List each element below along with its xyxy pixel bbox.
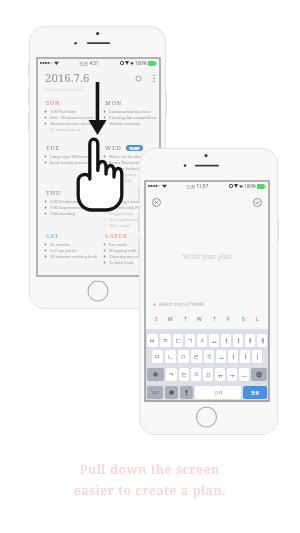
button[interactable]: More options xyxy=(148,73,159,84)
button[interactable]: ㅠ xyxy=(215,368,225,381)
staticText: 100% xyxy=(135,60,147,66)
button[interactable]: SUN xyxy=(44,99,102,132)
staticText: ㅗ xyxy=(218,353,225,361)
staticText: ㅅ xyxy=(199,337,206,345)
staticText: Write your plan xyxy=(145,252,269,261)
staticText: Practice guitar xyxy=(109,172,137,177)
staticText: LATER xyxy=(105,232,128,239)
staticText: easier to create a plan. xyxy=(74,482,227,499)
staticText: Car wash xyxy=(109,242,127,247)
staticText: M xyxy=(168,316,173,323)
staticText: Pull down the screen xyxy=(80,461,220,478)
button[interactable]: MON xyxy=(103,99,161,126)
staticText: Store gathering xyxy=(109,217,139,222)
staticText: Let's go party! xyxy=(50,248,77,253)
button[interactable]: ㅣ xyxy=(252,350,262,363)
button[interactable]: T xyxy=(209,314,220,325)
staticText: Club meeting xyxy=(50,211,76,216)
staticText: ㅣ xyxy=(254,353,261,361)
button[interactable]: ㅏ xyxy=(240,350,250,363)
staticText: Cleaning my room xyxy=(109,254,144,259)
staticText: 2016.7.6 xyxy=(45,70,90,86)
staticText: 3:00 Part time xyxy=(50,109,77,114)
button[interactable]: Done xyxy=(251,196,264,209)
staticText: ㅑ xyxy=(235,337,242,345)
button[interactable]: Backspace xyxy=(251,368,267,381)
staticText: F xyxy=(227,316,230,323)
button[interactable]: W xyxy=(194,314,205,325)
button[interactable]: ㅍ xyxy=(203,368,213,381)
button[interactable]: ㅂ xyxy=(147,334,158,347)
staticText: ㅠ xyxy=(217,371,224,379)
button[interactable]: SAT xyxy=(44,232,102,259)
staticText: MON xyxy=(105,99,122,106)
button[interactable]: ㅌ xyxy=(179,368,189,381)
button[interactable]: S xyxy=(151,314,162,325)
staticText: To bath Pooh xyxy=(109,260,134,265)
button[interactable]: ㅜ xyxy=(227,368,237,381)
staticText: ㅈ xyxy=(162,337,169,345)
staticText: Blog posting xyxy=(109,211,133,216)
button[interactable]: THU xyxy=(44,189,102,216)
button[interactable]: T xyxy=(180,314,191,325)
button[interactable]: F xyxy=(223,314,234,325)
button[interactable]: ㅐ xyxy=(245,334,255,347)
button[interactable]: L xyxy=(252,314,263,325)
button[interactable]: ㅗ xyxy=(216,350,226,363)
button[interactable]: Voice input xyxy=(180,386,193,399)
button[interactable]: ㄹ xyxy=(191,350,202,363)
button[interactable]: ㅓ xyxy=(228,350,238,363)
button[interactable]: ㅛ xyxy=(209,334,219,347)
staticText: T xyxy=(213,316,216,323)
staticText: TUE xyxy=(46,144,60,151)
button[interactable]: ㅑ xyxy=(233,334,243,347)
button[interactable]: 완료 xyxy=(243,386,267,399)
staticText: Water on the flower xyxy=(109,154,148,159)
button[interactable]: ㅊ xyxy=(191,368,201,381)
button[interactable]: Shift xyxy=(147,368,164,381)
staticText: ㅎ xyxy=(206,353,213,361)
staticText: ㅔ xyxy=(259,337,266,345)
staticText: Arrange bathroom xyxy=(109,166,145,171)
staticText: 100% xyxy=(244,183,256,189)
button[interactable]: ㄴ xyxy=(165,350,176,363)
button[interactable]: ㅎ xyxy=(204,350,214,363)
button[interactable]: ㅅ xyxy=(197,334,207,347)
button[interactable]: ㅕ xyxy=(221,334,231,347)
button[interactable]: Close xyxy=(150,196,163,209)
staticText: ㅛ xyxy=(211,337,218,345)
button[interactable]: S xyxy=(238,314,249,325)
button[interactable]: LATER xyxy=(103,232,161,265)
button[interactable]: ㄷ xyxy=(173,334,183,347)
button[interactable]: ㅡ xyxy=(239,368,249,381)
button[interactable]: 123 xyxy=(147,386,163,399)
staticText: You look nice today! xyxy=(45,87,86,93)
staticText: Mentor-mentee meeting xyxy=(50,121,97,126)
button[interactable]: ㅁ xyxy=(152,350,163,363)
staticText: 오전 4:31 xyxy=(79,60,99,66)
staticText: Creating Ad. competition xyxy=(109,115,157,120)
button[interactable]: ㄱ xyxy=(185,334,195,347)
button[interactable]: Profile xyxy=(133,73,144,84)
button[interactable]: ㅔ xyxy=(257,334,267,347)
staticText: Go movies xyxy=(50,242,70,247)
button[interactable]: FRI xyxy=(103,189,161,228)
button[interactable]: ㅇ xyxy=(178,350,189,363)
staticText: Diet : 30 minutes work~ xyxy=(50,115,96,120)
staticText: 간격 xyxy=(214,390,223,395)
button[interactable]: WED xyxy=(103,144,161,183)
staticText: W xyxy=(197,316,202,323)
staticText: ㅏ xyxy=(242,353,249,361)
staticText: Weekly meeting xyxy=(109,121,140,126)
staticText: ㅕ xyxy=(223,337,230,345)
button[interactable]: M xyxy=(165,314,176,325)
button[interactable]: ㅋ xyxy=(166,368,177,381)
button[interactable]: TUE xyxy=(44,144,102,165)
staticText: Shopping with friend xyxy=(109,248,150,253)
button[interactable]: ㅈ xyxy=(160,334,171,347)
button[interactable]: 간격 xyxy=(195,386,241,399)
button[interactable]: Change keyboard xyxy=(165,386,178,399)
staticText: S xyxy=(155,316,158,323)
staticText: Take a nap xyxy=(109,223,130,228)
